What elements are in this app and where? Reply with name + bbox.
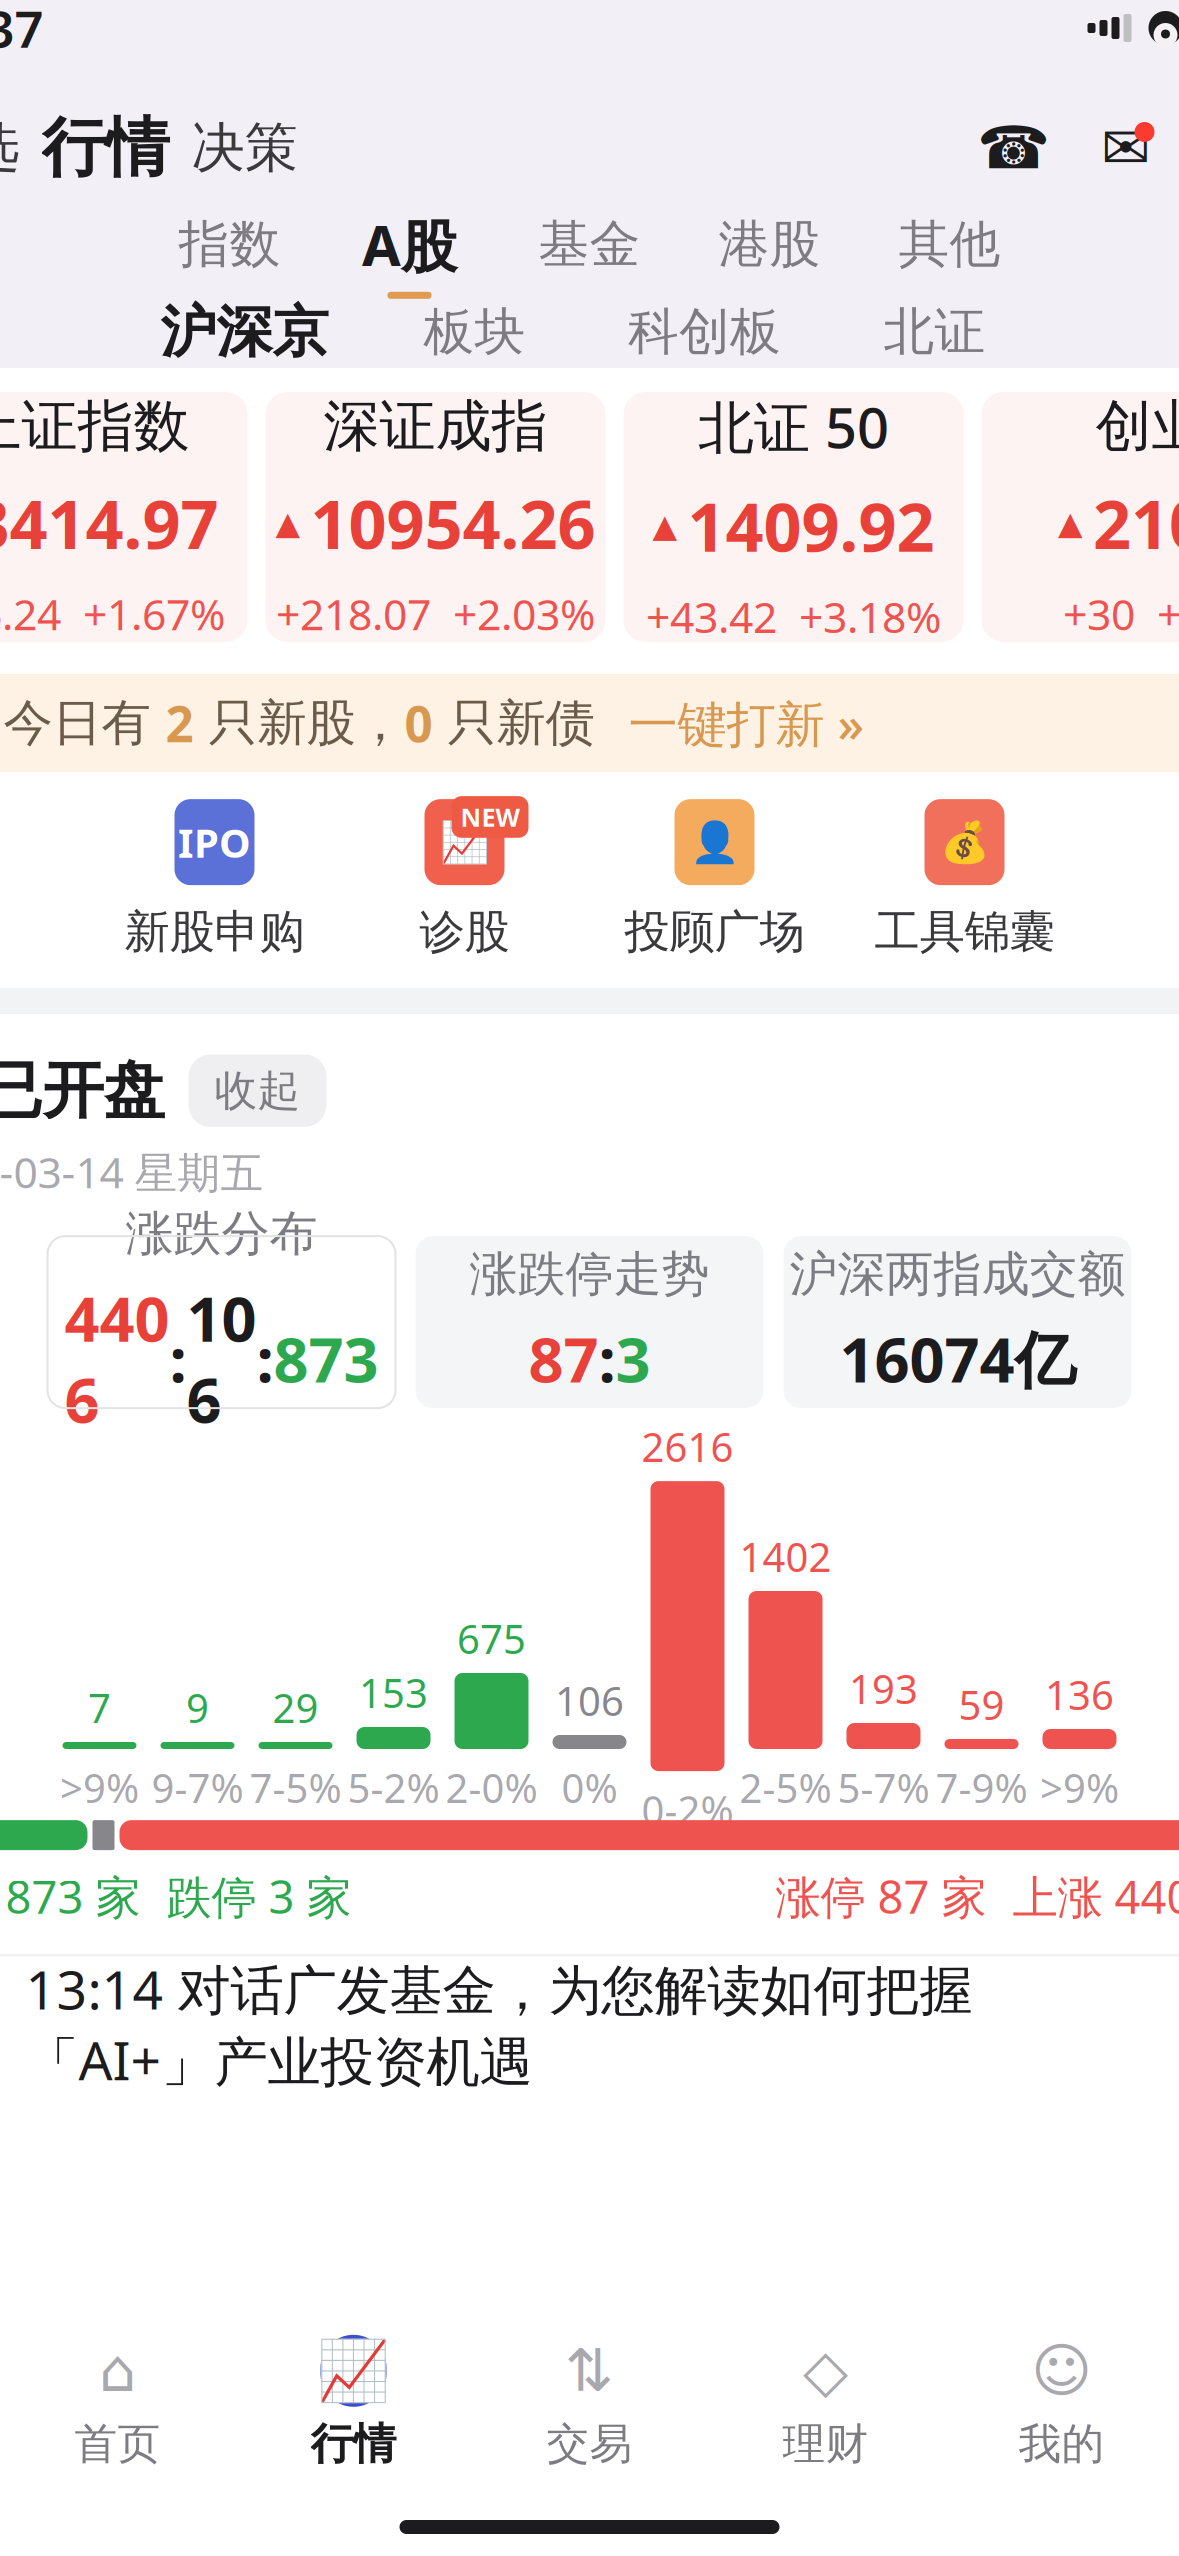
button[interactable]: 创业 xyxy=(981,392,1179,642)
button[interactable]: 📈 xyxy=(339,798,589,958)
staticText: 港股 xyxy=(718,213,820,276)
staticText: NEW xyxy=(460,800,519,834)
button[interactable]: 其他 xyxy=(859,214,1039,292)
staticText: 涨停 87 家 xyxy=(775,1866,986,1926)
staticText: 理财 xyxy=(782,2418,868,2470)
button[interactable]: 沪深两指成交额 xyxy=(783,1236,1131,1408)
staticText: 5-2% xyxy=(347,1761,439,1814)
staticText: 今日有 xyxy=(3,693,165,753)
button[interactable]: 基金 xyxy=(499,214,679,292)
button[interactable]: 客服 xyxy=(977,116,1049,180)
staticText: 1402 xyxy=(739,1530,831,1583)
staticText: 我的 xyxy=(1018,2418,1104,2470)
staticText: 深证成指 xyxy=(323,392,547,461)
staticText: 29 xyxy=(272,1681,318,1734)
staticText: 5-7% xyxy=(837,1761,929,1814)
staticText: 沪深两指成交额 xyxy=(789,1245,1125,1304)
button[interactable]: 📊 xyxy=(0,1050,1179,1200)
staticText: 10954.26 xyxy=(310,479,595,567)
button[interactable]: 投资 xyxy=(0,1966,1179,2082)
button[interactable]: 北证 50 xyxy=(623,392,963,642)
button[interactable]: 收起 xyxy=(188,1054,326,1127)
staticText: 2616 xyxy=(641,1420,733,1473)
staticText: 106 xyxy=(186,1277,256,1440)
button[interactable]: 板块 xyxy=(359,296,589,368)
staticText: 工具锦囊 xyxy=(874,904,1054,960)
staticText: 59 xyxy=(958,1678,1004,1731)
staticText: 14:37 xyxy=(0,0,43,62)
staticText: 交易 xyxy=(546,2418,632,2470)
button[interactable]: 北证 xyxy=(819,296,1049,368)
staticText: +218.07 xyxy=(276,585,431,642)
staticText: ⌂ xyxy=(99,2337,136,2404)
staticText: ☎ xyxy=(977,115,1050,181)
staticText: >9% xyxy=(60,1761,139,1814)
staticText: 87 xyxy=(528,1318,598,1399)
staticText: 已开盘 xyxy=(0,1053,164,1128)
staticText: : xyxy=(256,1318,273,1399)
staticText: 4406 xyxy=(64,1277,169,1440)
button[interactable]: ⌂ xyxy=(0,2330,235,2474)
button[interactable]: ◇ xyxy=(707,2330,943,2474)
button[interactable]: 上证指数 xyxy=(0,392,247,642)
staticText: 涨跌分布 xyxy=(125,1204,317,1263)
staticText: 2-5% xyxy=(739,1761,831,1814)
staticText: 7-5% xyxy=(249,1761,341,1814)
staticText: : xyxy=(169,1318,186,1399)
staticText: ▲ xyxy=(652,508,677,544)
staticText: 上证指数 xyxy=(0,392,189,461)
button[interactable]: A股 xyxy=(319,214,499,292)
staticText: 0 xyxy=(404,690,432,756)
staticText: 创业 xyxy=(1095,392,1179,461)
staticText: 9-7% xyxy=(151,1761,243,1814)
button[interactable]: 🔊 xyxy=(0,674,1179,772)
button[interactable]: 涨跌分布 xyxy=(47,1236,395,1408)
staticText: 新股申购 xyxy=(124,904,304,960)
button[interactable]: 💰 xyxy=(839,798,1089,958)
staticText: 1409.92 xyxy=(687,482,934,570)
staticText: 诊股 xyxy=(419,904,509,960)
button[interactable]: 指数 xyxy=(139,214,319,292)
staticText: 7-9% xyxy=(935,1761,1027,1814)
button[interactable]: ☺ xyxy=(943,2330,1179,2474)
button[interactable]: 科创板 xyxy=(589,296,819,368)
button[interactable]: 决策 xyxy=(183,115,305,181)
staticText: 上涨 4406 家 xyxy=(1012,1866,1179,1926)
button[interactable]: 港股 xyxy=(679,214,859,292)
button[interactable]: 消息 xyxy=(1089,116,1161,180)
staticText: 3414.97 xyxy=(0,479,218,567)
staticText: +30 xyxy=(1063,585,1135,642)
staticText: >9% xyxy=(1040,1761,1119,1814)
staticText: 136 xyxy=(1045,1668,1114,1721)
staticText: 北证 50 xyxy=(698,389,889,464)
staticText: 13:14 对话广发基金，为您解读如何把握 「AI+」产业投资机遇 xyxy=(25,1953,972,2095)
staticText: 沪深京 xyxy=(160,298,328,366)
staticText: 基金 xyxy=(538,213,640,276)
staticText: +3.18% xyxy=(799,588,941,645)
button[interactable]: 👤 xyxy=(589,798,839,958)
button[interactable]: 📈 xyxy=(235,2330,471,2474)
staticText: 873 xyxy=(273,1318,378,1399)
staticText: 首页 xyxy=(74,2418,160,2470)
staticText: +1.67% xyxy=(83,585,225,642)
staticText: 9 xyxy=(186,1681,209,1734)
staticText: A股 xyxy=(362,207,457,282)
staticText: 3 xyxy=(615,1318,650,1399)
button[interactable]: IPO xyxy=(89,798,339,958)
staticText: IPO xyxy=(178,816,251,869)
staticText: ☺ xyxy=(1031,2337,1092,2404)
staticText: 💰 xyxy=(939,819,989,865)
button[interactable]: 涨跌停走势 xyxy=(415,1236,763,1408)
button[interactable]: 深证成指 xyxy=(265,392,605,642)
staticText: +56.24 xyxy=(0,585,61,642)
staticText: 科创板 xyxy=(628,301,781,363)
button[interactable]: 行情 xyxy=(27,109,183,187)
button[interactable]: ⇅ xyxy=(471,2330,707,2474)
staticText: 193 xyxy=(849,1662,918,1715)
staticText: 2 xyxy=(165,690,193,756)
button[interactable]: 自选 xyxy=(0,115,27,181)
staticText: 跌停 3 家 xyxy=(166,1866,351,1926)
staticText: 行情 xyxy=(41,109,169,187)
button[interactable]: 沪深京 xyxy=(129,296,359,368)
